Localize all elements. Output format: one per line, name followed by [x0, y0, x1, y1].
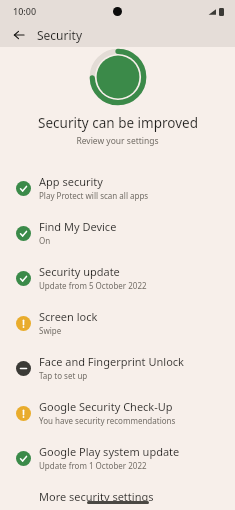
button[interactable]: Find My Device	[0, 210, 235, 255]
button[interactable]: Back	[8, 24, 30, 46]
staticText: More security settings	[39, 489, 154, 501]
button[interactable]: More security settings	[0, 480, 235, 510]
staticText: Update from 5 October 2022	[39, 280, 147, 291]
staticText: Find My Device	[39, 219, 117, 234]
staticText: Screen lock	[39, 309, 98, 324]
staticText: Security update	[39, 264, 120, 279]
staticText: Security can be improved	[38, 114, 198, 132]
staticText: Play Protect will scan all apps	[39, 190, 149, 201]
button[interactable]: App security	[0, 165, 235, 210]
staticText: 10:00	[13, 5, 37, 17]
button[interactable]: Security update	[0, 255, 235, 300]
staticText: Face and Fingerprint Unlock	[39, 354, 184, 369]
button[interactable]: Screen lock	[0, 300, 235, 345]
button[interactable]: Google Play system update	[0, 435, 235, 480]
button[interactable]: Google Security Check-Up	[0, 390, 235, 435]
staticText: You have security recommendations	[39, 415, 176, 426]
staticText: Swipe	[39, 325, 62, 336]
staticText: Review your settings	[76, 135, 159, 147]
staticText: Google Play system update	[39, 444, 180, 459]
staticText: App security	[39, 174, 103, 189]
button[interactable]: Face and Fingerprint Unlock	[0, 345, 235, 390]
staticText: Security	[37, 27, 83, 43]
staticText: Update from 1 October 2022	[39, 460, 147, 471]
staticText: Tap to set up	[39, 370, 88, 381]
staticText: Google Security Check-Up	[39, 399, 173, 414]
staticText: On	[39, 235, 51, 246]
